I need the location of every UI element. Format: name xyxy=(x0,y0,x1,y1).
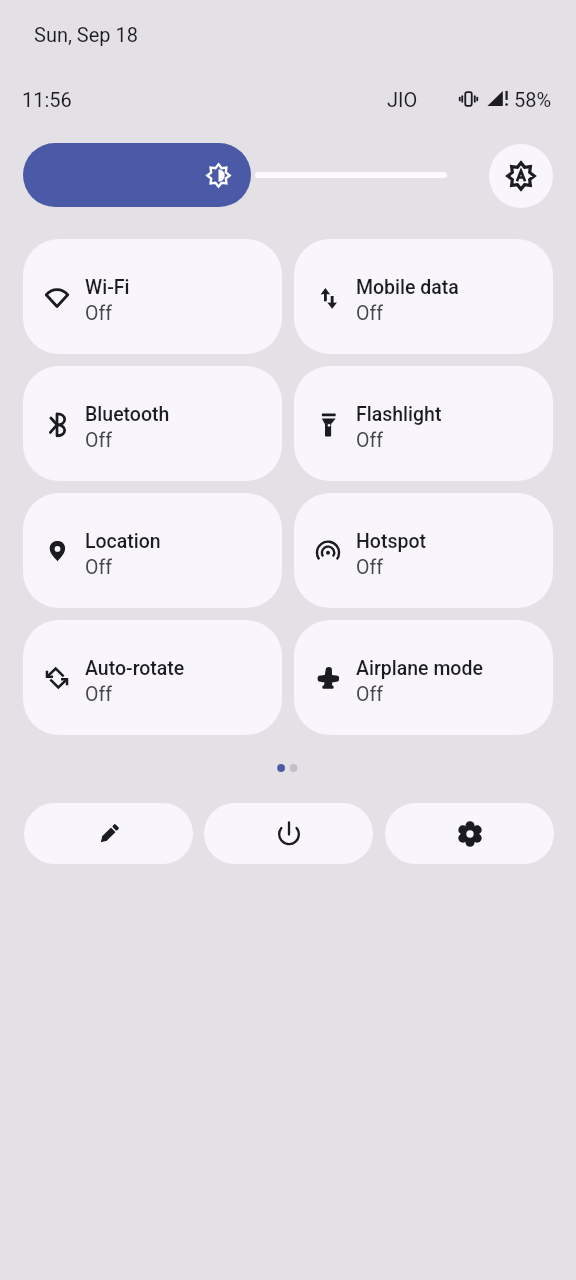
button[interactable]: Airplane mode xyxy=(294,620,553,735)
button[interactable]: Hotspot xyxy=(294,493,553,608)
staticText: Bluetooth xyxy=(85,403,170,426)
button[interactable]: Settings xyxy=(385,803,554,864)
staticText: Auto-rotate xyxy=(85,657,185,680)
button[interactable]: Mobile data xyxy=(294,239,553,354)
staticText: Off xyxy=(85,429,112,452)
button[interactable]: Power xyxy=(204,803,373,864)
staticText: Off xyxy=(356,429,383,452)
button[interactable]: Location xyxy=(23,493,282,608)
staticText: 11:56 xyxy=(22,88,72,111)
staticText: Sun, Sep 18 xyxy=(34,23,138,46)
staticText: Mobile data xyxy=(356,276,459,299)
button[interactable]: Brightness xyxy=(23,143,447,207)
staticText: Off xyxy=(85,683,112,706)
staticText: Off xyxy=(356,683,383,706)
staticText: Hotspot xyxy=(356,530,426,553)
staticText: Off xyxy=(85,556,112,579)
staticText: JIO xyxy=(387,88,418,111)
button[interactable]: Auto brightness xyxy=(489,144,553,208)
staticText: Off xyxy=(356,556,383,579)
button[interactable]: Wi-Fi xyxy=(23,239,282,354)
button[interactable]: Flashlight xyxy=(294,366,553,481)
staticText: Location xyxy=(85,530,161,553)
staticText: Off xyxy=(85,302,112,325)
button[interactable]: Edit xyxy=(24,803,193,864)
staticText: 58% xyxy=(514,88,552,111)
staticText: Off xyxy=(356,302,383,325)
button[interactable]: Auto-rotate xyxy=(23,620,282,735)
staticText: Airplane mode xyxy=(356,657,483,680)
staticText: Wi-Fi xyxy=(85,276,130,299)
staticText: Flashlight xyxy=(356,403,442,426)
button[interactable]: Bluetooth xyxy=(23,366,282,481)
